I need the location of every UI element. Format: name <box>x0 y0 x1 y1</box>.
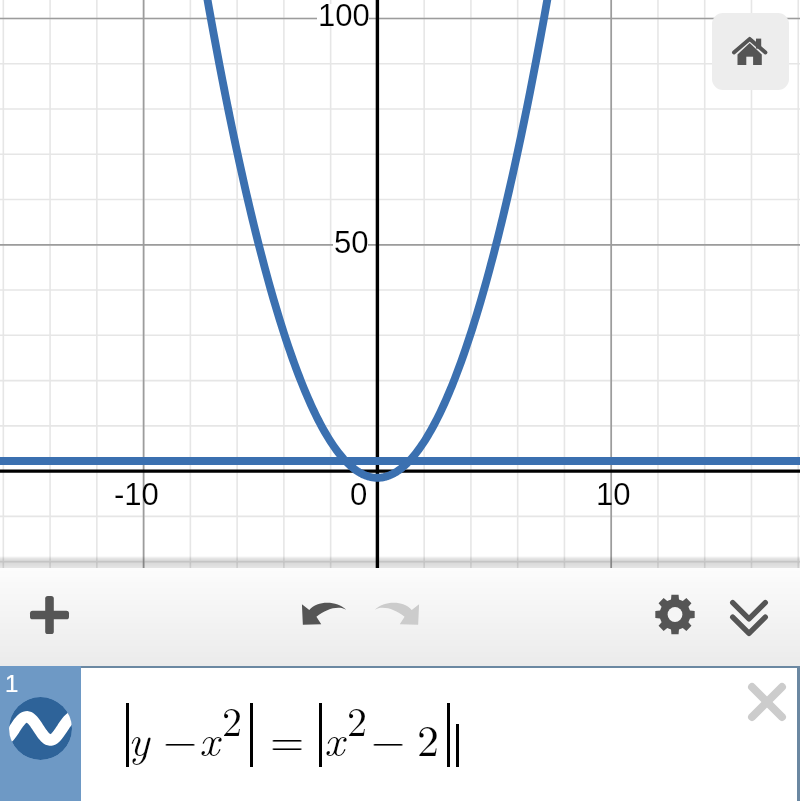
button[interactable]: Redo <box>349 572 429 634</box>
button[interactable]: Add expression <box>4 572 94 634</box>
button[interactable]: Collapse keypad <box>705 572 791 634</box>
button[interactable]: Undo <box>276 572 356 634</box>
staticText: 1 <box>5 670 19 697</box>
staticText: 10 <box>596 477 631 512</box>
staticText: − <box>163 706 198 768</box>
staticText: y <box>128 706 150 768</box>
button[interactable]: Settings <box>630 572 710 634</box>
staticText: 2 <box>347 691 367 748</box>
staticText: x <box>324 706 345 768</box>
staticText: = <box>270 706 305 768</box>
button[interactable]: Home <box>712 13 789 90</box>
button[interactable]: 1 <box>0 666 800 801</box>
staticText: x <box>199 706 220 768</box>
staticText: 50 <box>334 225 369 260</box>
staticText: 2 <box>222 691 242 748</box>
staticText: -10 <box>114 477 159 512</box>
staticText: 2 <box>417 706 439 768</box>
staticText: 100 <box>318 0 370 33</box>
staticText: 0 <box>350 477 368 512</box>
staticText: − <box>371 706 406 768</box>
button[interactable]: Delete expression <box>741 676 792 727</box>
